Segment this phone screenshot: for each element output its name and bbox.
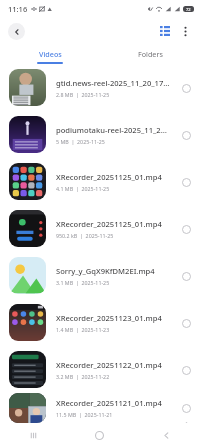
staticText: 11.5 MB | 2025-11-21 bbox=[56, 411, 113, 418]
staticText: 2.8 MB | 2025-11-25 bbox=[56, 91, 110, 98]
staticText: 1.4 MB | 2025-11-23 bbox=[56, 326, 110, 333]
button[interactable]: Folders bbox=[100, 45, 200, 64]
button[interactable]: Change view bbox=[155, 21, 175, 41]
staticText: XRecorder_20251121_01.mp4 bbox=[56, 398, 162, 408]
button[interactable]: XRecorder_20251121_01.mp4 bbox=[0, 393, 200, 423]
button[interactable]: Select item bbox=[175, 359, 197, 381]
button[interactable]: More options bbox=[175, 21, 195, 41]
button[interactable]: Sorry_y_GqX9KfDM2EI.mp4 bbox=[0, 252, 200, 299]
staticText: Folders bbox=[138, 49, 163, 59]
button[interactable]: Select item bbox=[175, 124, 197, 146]
staticText: podiumotaku-reel-2025_11_20_2… bbox=[56, 125, 171, 135]
staticText: 950.2 kB | 2025-11-25 bbox=[56, 232, 114, 239]
button[interactable]: XRecorder_20251125_01.mp4 bbox=[0, 205, 200, 252]
staticText: 4.1 MB | 2025-11-25 bbox=[56, 185, 110, 192]
button[interactable]: Back bbox=[8, 23, 25, 40]
button[interactable]: XRecorder_20251125_01.mp4 bbox=[0, 158, 200, 205]
staticText: 3.2 MB | 2025-11-22 bbox=[56, 373, 110, 380]
button[interactable]: Recent apps bbox=[0, 423, 66, 447]
staticText: 72 bbox=[186, 7, 191, 12]
staticText: 5 MB | 2025-11-25 bbox=[56, 138, 105, 145]
staticText: XRecorder_20251123_01.mp4 bbox=[56, 313, 162, 323]
button[interactable]: XRecorder_20251122_01.mp4 bbox=[0, 346, 200, 393]
button[interactable]: Select item bbox=[175, 397, 197, 419]
button[interactable]: Select item bbox=[175, 265, 197, 287]
staticText: XRecorder_20251122_01.mp4 bbox=[56, 360, 162, 370]
button[interactable]: Select item bbox=[175, 218, 197, 240]
staticText: XRecorder_20251125_01.mp4 bbox=[56, 172, 162, 182]
staticText: 3.1 MB | 2025-11-25 bbox=[56, 279, 110, 286]
button[interactable]: gtid.news-reel-2025_11_20_17_0… bbox=[0, 64, 200, 111]
button[interactable]: Select item bbox=[175, 77, 197, 99]
button[interactable]: Videos bbox=[0, 45, 100, 64]
button[interactable]: Select item bbox=[175, 312, 197, 334]
button[interactable]: Back bbox=[133, 423, 200, 447]
staticText: Sorry_y_GqX9KfDM2EI.mp4 bbox=[56, 266, 155, 276]
staticText: 11:16 bbox=[8, 4, 28, 14]
staticText: Videos bbox=[39, 49, 62, 59]
button[interactable]: Home bbox=[66, 423, 133, 447]
button[interactable]: Select item bbox=[175, 171, 197, 193]
button[interactable]: podiumotaku-reel-2025_11_20_2… bbox=[0, 111, 200, 158]
staticText: gtid.news-reel-2025_11_20_17_0… bbox=[56, 78, 171, 88]
button[interactable]: XRecorder_20251123_01.mp4 bbox=[0, 299, 200, 346]
staticText: XRecorder_20251125_01.mp4 bbox=[56, 219, 162, 229]
